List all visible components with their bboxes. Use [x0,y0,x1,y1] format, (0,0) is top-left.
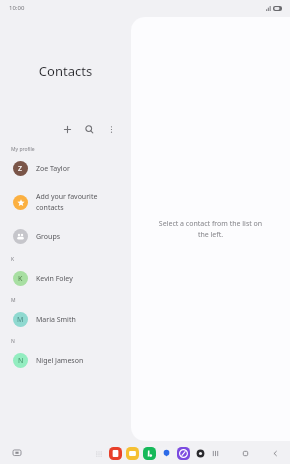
staticText: K [11,256,15,263]
button[interactable]: N [0,347,131,374]
button[interactable]: Recents [208,446,222,460]
button[interactable]: Gallery [126,447,139,460]
staticText: Maria Smith [36,315,76,325]
button[interactable]: M [0,306,131,333]
staticText: Groups [36,232,61,242]
button[interactable]: Messages [160,447,173,460]
button[interactable]: K [0,265,131,292]
staticText: M [11,297,16,304]
staticText: N [11,338,15,345]
button[interactable]: Search [81,121,97,137]
button[interactable]: Phone [143,447,156,460]
button[interactable]: Back [268,446,282,460]
button[interactable]: Hide keyboard [11,447,23,459]
button[interactable]: Samsung Internet [109,447,122,460]
staticText: My profile [11,146,35,153]
button[interactable]: More options [103,121,119,137]
button[interactable]: Home [238,446,252,460]
staticText: K [18,274,23,284]
button[interactable]: Compass [177,447,190,460]
staticText: Add your favourite contacts [36,192,98,212]
staticText: Zoe Taylor [36,164,70,174]
staticText: Select a contact from the list on the le… [153,219,268,239]
button[interactable]: Z [0,155,131,182]
button[interactable]: Groups [0,223,131,250]
staticText: 10:00 [9,4,25,12]
staticText: Kevin Foley [36,274,73,284]
staticText: M [17,315,24,325]
button[interactable]: Camera [194,447,207,460]
button[interactable]: Add contact [59,121,75,137]
staticText: N [18,356,24,366]
button[interactable]: Add your favourite contacts [0,186,131,218]
staticText: Nigel Jameson [36,356,84,366]
button[interactable]: All apps [93,448,105,460]
staticText: Contacts [0,62,131,80]
staticText: Z [18,164,23,174]
